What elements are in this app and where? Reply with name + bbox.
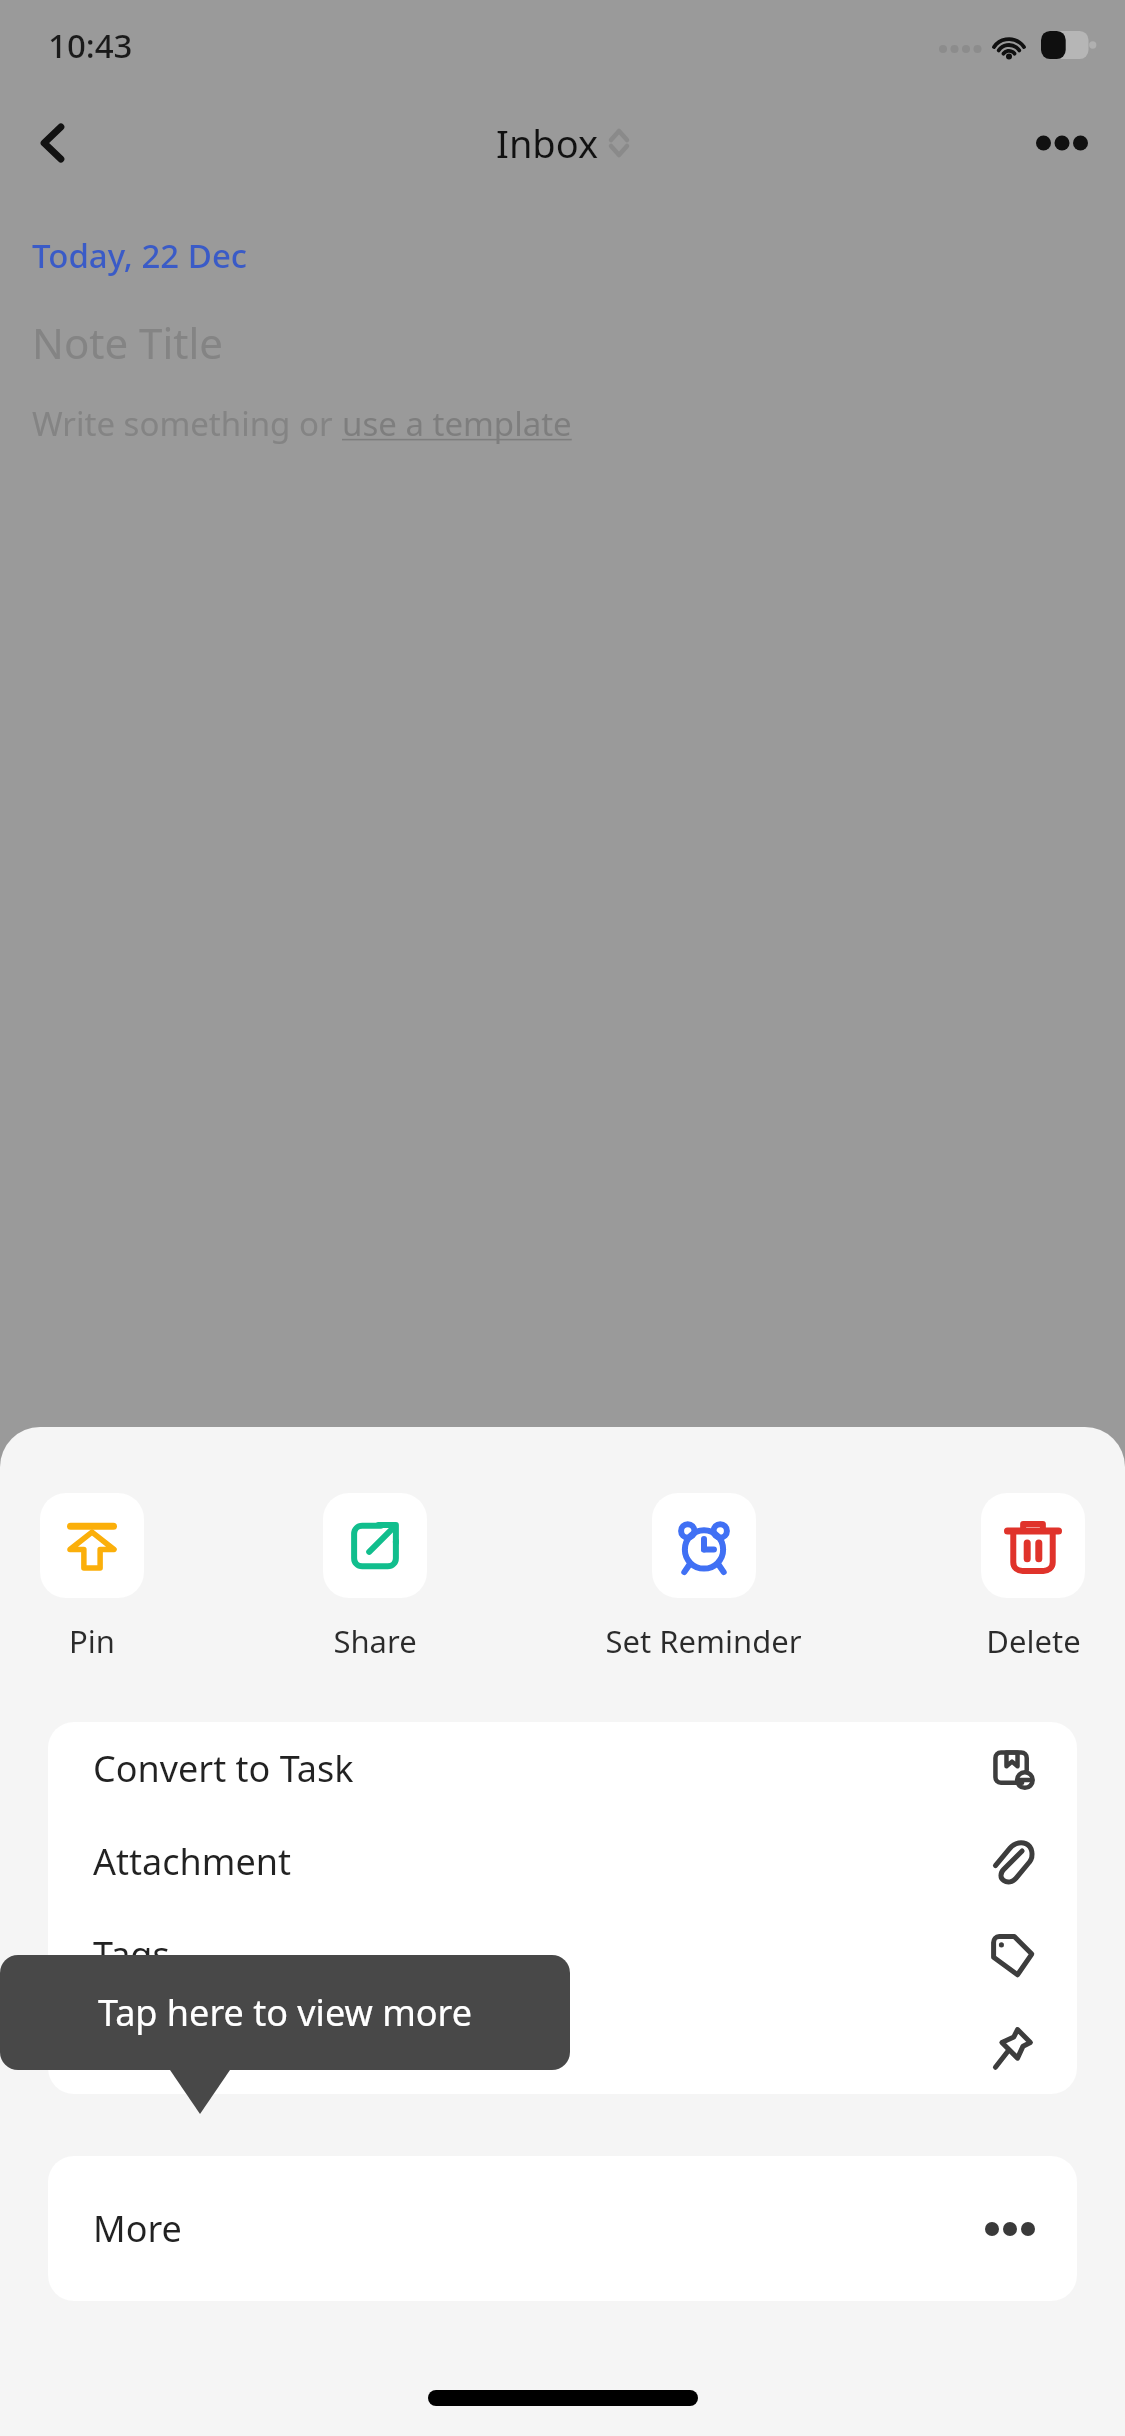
button[interactable]: Delete	[981, 1493, 1085, 1662]
button[interactable]: Back	[18, 107, 90, 179]
button[interactable]: Add to Activity	[48, 2001, 1077, 2094]
staticText: Write something or	[32, 401, 342, 446]
button[interactable]: More	[48, 2156, 1077, 2301]
button[interactable]: Tags	[48, 1908, 1077, 2001]
button[interactable]: Attachment	[48, 1815, 1077, 1908]
staticText: Attachment	[93, 1837, 291, 1886]
staticText: 10:43	[48, 23, 133, 68]
staticText: More	[93, 2204, 182, 2253]
staticText: Inbox	[496, 117, 599, 169]
staticText: Pin	[69, 1620, 115, 1662]
staticText: Set Reminder	[605, 1620, 802, 1662]
staticText: Convert to Task	[93, 1744, 354, 1793]
button[interactable]: Inbox	[496, 117, 629, 169]
staticText: Note Title	[32, 314, 223, 371]
button[interactable]: use a template	[342, 401, 572, 446]
button[interactable]: Convert to Task	[48, 1722, 1077, 1815]
button[interactable]: More options	[1023, 104, 1101, 182]
button[interactable]: Set Reminder	[605, 1493, 802, 1662]
staticText: Add to Activity	[93, 2023, 336, 2072]
button[interactable]: Pin	[40, 1493, 144, 1662]
staticText: Delete	[986, 1620, 1081, 1662]
staticText: Share	[333, 1620, 417, 1662]
button[interactable]: Share	[323, 1493, 427, 1662]
staticText: Tap here to view more	[98, 1988, 473, 2037]
staticText: Today, 22 Dec	[32, 233, 248, 278]
staticText: Tags	[93, 1930, 170, 1979]
